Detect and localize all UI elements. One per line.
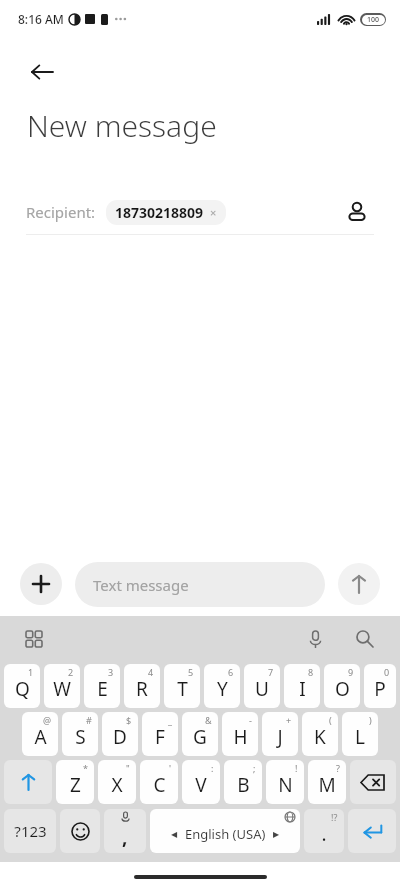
staticText: ▶ bbox=[273, 830, 280, 839]
button[interactable]: _ bbox=[142, 712, 178, 756]
staticText: $ bbox=[126, 714, 132, 726]
button[interactable]: !? bbox=[304, 809, 344, 853]
staticText: @ bbox=[43, 714, 52, 726]
button[interactable]: & bbox=[182, 712, 218, 756]
button[interactable]: 3 bbox=[84, 664, 120, 708]
staticText: Z bbox=[70, 772, 81, 798]
button[interactable]: ( bbox=[302, 712, 338, 756]
staticText: R bbox=[136, 676, 148, 702]
staticText: 5 bbox=[188, 666, 194, 678]
staticText: A bbox=[34, 724, 47, 750]
button[interactable]: 0 bbox=[364, 664, 396, 708]
button[interactable]: , bbox=[104, 809, 146, 853]
staticText: ; bbox=[253, 762, 256, 774]
staticText: E bbox=[97, 676, 108, 702]
button[interactable]: @ bbox=[22, 712, 58, 756]
staticText: O bbox=[335, 676, 350, 702]
staticText: !? bbox=[331, 811, 338, 823]
staticText: & bbox=[205, 714, 212, 726]
staticText: English (USA) bbox=[185, 825, 266, 843]
button[interactable]: + bbox=[262, 712, 298, 756]
staticText: 7 bbox=[268, 666, 274, 678]
staticText: J bbox=[277, 724, 283, 750]
staticText: ) bbox=[369, 714, 372, 726]
button[interactable]: 5 bbox=[164, 664, 200, 708]
staticText: U bbox=[255, 676, 269, 702]
staticText: ? bbox=[336, 762, 340, 774]
staticText: ◀ bbox=[171, 830, 178, 839]
staticText: 8 bbox=[308, 666, 314, 678]
button[interactable]: : bbox=[182, 760, 220, 804]
staticText: _ bbox=[168, 714, 172, 726]
staticText: L bbox=[355, 724, 365, 750]
button[interactable]: $ bbox=[102, 712, 138, 756]
button[interactable]: 9 bbox=[324, 664, 360, 708]
button[interactable]: 6 bbox=[204, 664, 240, 708]
staticText: D bbox=[113, 724, 127, 750]
staticText: S bbox=[75, 724, 86, 750]
staticText: X bbox=[111, 772, 123, 798]
staticText: K bbox=[314, 724, 326, 750]
staticText: B bbox=[237, 772, 250, 798]
button[interactable]: ; bbox=[224, 760, 262, 804]
button[interactable]: Recipient: bbox=[26, 190, 374, 234]
button[interactable]: " bbox=[98, 760, 136, 804]
button[interactable]: ) bbox=[342, 712, 378, 756]
staticText: 18730218809 bbox=[115, 203, 204, 222]
staticText: H bbox=[233, 724, 248, 750]
staticText: 3 bbox=[108, 666, 114, 678]
button[interactable]: ? bbox=[308, 760, 346, 804]
button[interactable]: ! bbox=[266, 760, 304, 804]
button[interactable]: Voice input bbox=[298, 622, 332, 656]
button[interactable]: 2 bbox=[44, 664, 80, 708]
staticText: N bbox=[278, 772, 293, 798]
staticText: 4 bbox=[148, 666, 154, 678]
staticText: G bbox=[193, 724, 207, 750]
button[interactable]: 4 bbox=[124, 664, 160, 708]
button[interactable]: * bbox=[56, 760, 94, 804]
button[interactable]: Add attachment bbox=[20, 563, 62, 605]
staticText: + bbox=[286, 714, 292, 726]
button[interactable]: - bbox=[222, 712, 258, 756]
staticText: × bbox=[210, 205, 217, 220]
staticText: C bbox=[153, 772, 166, 798]
button[interactable]: 8 bbox=[284, 664, 320, 708]
staticText: # bbox=[86, 714, 92, 726]
button[interactable]: Toolbar bbox=[18, 623, 50, 655]
staticText: ' bbox=[169, 762, 172, 774]
staticText: 100 bbox=[367, 15, 380, 25]
button[interactable] bbox=[350, 760, 396, 804]
button[interactable]: ?123 bbox=[4, 809, 56, 853]
button[interactable] bbox=[60, 809, 100, 853]
staticText: ! bbox=[295, 762, 298, 774]
staticText: Q bbox=[15, 676, 30, 702]
button[interactable]: Choose contact bbox=[340, 195, 374, 229]
staticText: New message bbox=[27, 105, 217, 146]
staticText: ?123 bbox=[14, 821, 47, 841]
staticText: M bbox=[318, 772, 336, 798]
button[interactable]: 1 bbox=[4, 664, 40, 708]
button[interactable]: Back bbox=[14, 44, 70, 100]
staticText: F bbox=[155, 724, 165, 750]
staticText: . bbox=[321, 821, 327, 847]
button[interactable]: Send bbox=[338, 563, 380, 605]
staticText: Text message bbox=[93, 575, 189, 595]
button[interactable]: Text message bbox=[75, 562, 325, 607]
staticText: Y bbox=[217, 676, 228, 702]
button[interactable] bbox=[4, 760, 52, 804]
staticText: , bbox=[122, 824, 128, 850]
staticText: W bbox=[53, 676, 71, 702]
button[interactable] bbox=[348, 809, 396, 853]
button[interactable]: ' bbox=[140, 760, 178, 804]
staticText: : bbox=[211, 762, 214, 774]
staticText: V bbox=[195, 772, 207, 798]
staticText: I bbox=[299, 676, 306, 702]
staticText: Recipient: bbox=[26, 202, 96, 222]
staticText: " bbox=[126, 762, 130, 774]
button[interactable]: Space bbox=[150, 809, 300, 853]
staticText: P bbox=[374, 676, 386, 702]
button[interactable]: Search bbox=[348, 622, 382, 656]
staticText: * bbox=[83, 762, 88, 774]
button[interactable]: 7 bbox=[244, 664, 280, 708]
button[interactable]: # bbox=[62, 712, 98, 756]
